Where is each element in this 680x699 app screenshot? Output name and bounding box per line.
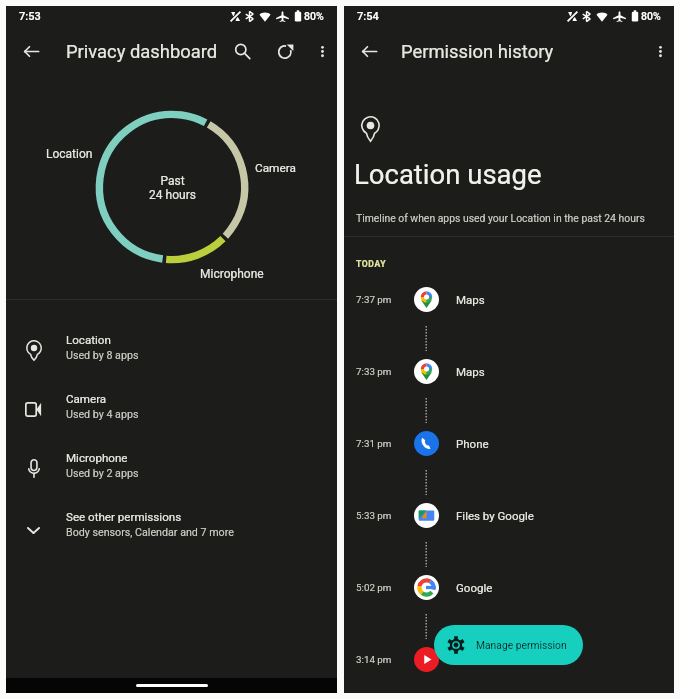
staticText: Maps <box>456 365 485 378</box>
staticText: Permission history <box>401 41 554 63</box>
staticText: 7:31 pm <box>356 438 392 449</box>
staticText: Past <box>160 174 185 188</box>
staticText: 24 hours <box>149 188 196 202</box>
button[interactable]: Microphone <box>6 453 337 512</box>
button[interactable]: 5:33 pm <box>344 497 674 533</box>
staticText: 7:33 pm <box>356 366 392 377</box>
staticText: Body sensors, Calendar and 7 more <box>66 526 234 539</box>
staticText: 7:37 pm <box>356 294 392 305</box>
staticText: 80% <box>641 10 661 22</box>
button[interactable]: Refresh <box>271 37 299 65</box>
staticText: 5:02 pm <box>356 582 392 593</box>
staticText: Microphone <box>66 451 128 465</box>
button[interactable]: Back <box>356 38 382 64</box>
button[interactable]: See other permissions <box>6 512 337 571</box>
staticText: Location <box>46 147 93 161</box>
staticText: Files by Google <box>456 509 534 522</box>
button[interactable]: Manage permission <box>434 625 583 665</box>
staticText: Used by 4 apps <box>66 408 139 421</box>
button[interactable]: Back <box>18 38 44 64</box>
button[interactable]: Camera <box>6 394 337 453</box>
staticText: 3:14 pm <box>356 654 392 665</box>
staticText: Maps <box>456 293 485 306</box>
staticText: Location <box>66 333 111 347</box>
staticText: See other permissions <box>66 510 182 524</box>
button[interactable]: 7:37 pm <box>344 281 674 317</box>
button[interactable]: 7:33 pm <box>344 353 674 389</box>
staticText: Google <box>456 581 493 594</box>
staticText: 7:53 <box>19 10 41 23</box>
staticText: TODAY <box>356 259 387 269</box>
staticText: Location usage <box>354 158 542 190</box>
button[interactable]: More options <box>646 37 674 65</box>
staticText: Phone <box>456 437 489 450</box>
button[interactable]: Location <box>6 335 337 394</box>
button[interactable]: 5:02 pm <box>344 569 674 605</box>
staticText: Camera <box>255 161 296 175</box>
staticText: Used by 8 apps <box>66 349 139 362</box>
staticText: Privacy dashboard <box>66 41 218 63</box>
staticText: Used by 2 apps <box>66 467 139 480</box>
staticText: 80% <box>304 10 324 22</box>
staticText: 5:33 pm <box>356 510 392 521</box>
staticText: Microphone <box>200 267 264 281</box>
button[interactable]: 7:31 pm <box>344 425 674 461</box>
staticText: Camera <box>66 392 107 406</box>
staticText: Manage permission <box>476 639 567 651</box>
button[interactable]: Search <box>228 37 256 65</box>
button[interactable]: 3:14 pm <box>344 641 674 677</box>
staticText: Timeline of when apps used your Location… <box>356 212 645 224</box>
staticText: 7:54 <box>357 10 379 23</box>
button[interactable]: More options <box>308 37 336 65</box>
